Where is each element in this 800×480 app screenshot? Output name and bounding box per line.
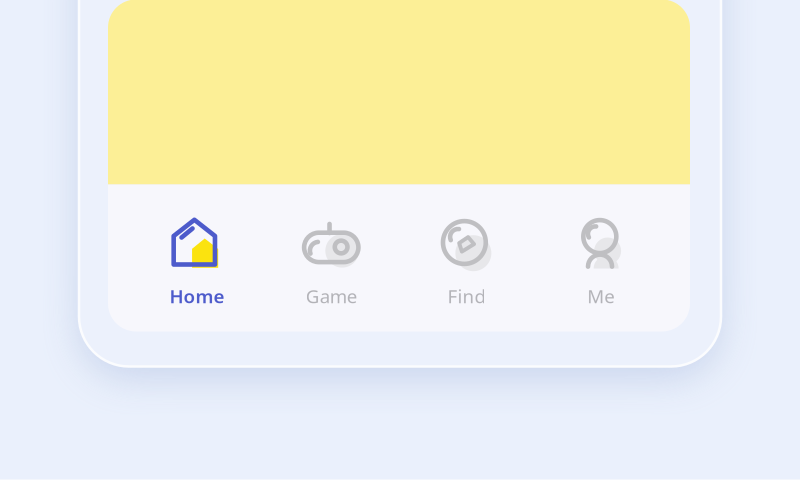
button[interactable]: Me xyxy=(534,184,669,331)
staticText: Me xyxy=(587,283,615,308)
staticText: Home xyxy=(169,283,224,308)
button[interactable]: Game xyxy=(264,184,399,331)
button[interactable]: Find xyxy=(399,184,534,331)
staticText: Find xyxy=(447,283,485,308)
button[interactable]: Home xyxy=(129,184,264,331)
staticText: Game xyxy=(306,283,358,308)
